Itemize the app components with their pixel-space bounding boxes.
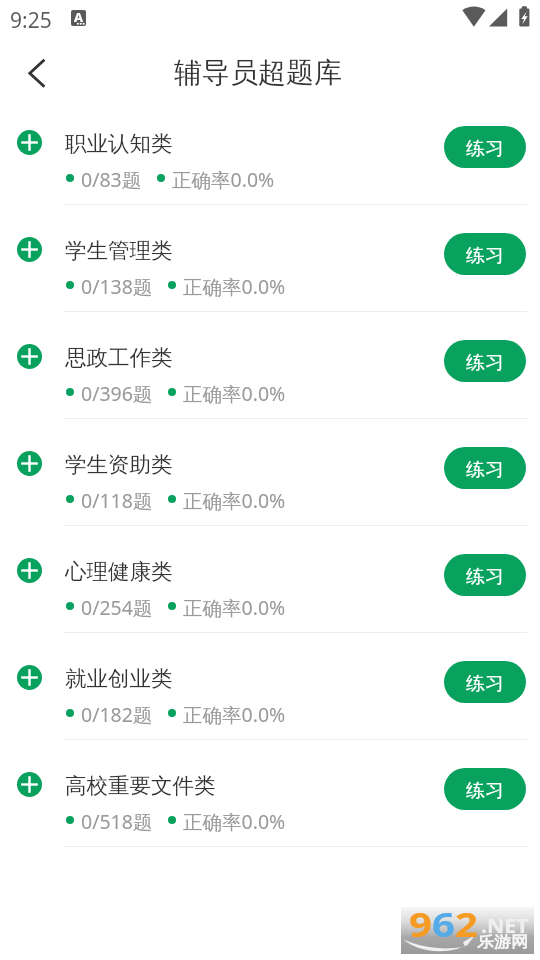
button[interactable]: 学生管理类 [0,204,540,311]
staticText: 0/83题 [81,166,142,193]
staticText: 9 [409,901,433,948]
staticText: 2 [455,901,479,948]
staticText: 正确率0.0% [183,487,286,514]
staticText: 练习 [466,779,504,803]
staticText: 学生资助类 [65,451,173,478]
button[interactable]: 高校重要文件类 [0,739,540,846]
staticText: 辅导员超题库 [174,55,342,90]
staticText: 学生管理类 [65,237,173,264]
staticText: 0/118题 [81,487,153,514]
staticText: 乐游网 [477,933,528,951]
staticText: 高校重要文件类 [65,772,216,799]
button[interactable]: 练习 [444,554,526,596]
staticText: 9:25 [10,6,52,35]
button[interactable]: 练习 [444,340,526,382]
staticText: 0/254题 [81,594,153,621]
staticText: 职业认知类 [65,130,173,157]
staticText: 正确率0.0% [183,380,286,407]
button[interactable]: 职业认知类 [0,97,540,204]
staticText: A [74,10,83,24]
staticText: 练习 [466,565,504,589]
staticText: 练习 [466,137,504,161]
staticText: 正确率0.0% [172,166,275,193]
button[interactable]: 练习 [444,447,526,489]
staticText: 正确率0.0% [183,273,286,300]
staticText: .NET [481,913,529,939]
staticText: 正确率0.0% [183,701,286,728]
button[interactable]: 练习 [444,233,526,275]
staticText: 练习 [466,351,504,375]
button[interactable]: 心理健康类 [0,525,540,632]
staticText: 0/182题 [81,701,153,728]
staticText: 练习 [466,672,504,696]
button[interactable]: Back [12,49,60,89]
staticText: 正确率0.0% [183,594,286,621]
staticText: 0/138题 [81,273,153,300]
button[interactable]: 思政工作类 [0,311,540,418]
button[interactable]: 就业创业类 [0,632,540,739]
button[interactable]: 学生资助类 [0,418,540,525]
staticText: 0/396题 [81,380,153,407]
button[interactable]: 练习 [444,768,526,810]
staticText: 6 [432,901,456,948]
staticText: 正确率0.0% [183,808,286,835]
staticText: 练习 [466,244,504,268]
staticText: 思政工作类 [65,344,173,371]
button[interactable]: 练习 [444,126,526,168]
staticText: 0/518题 [81,808,153,835]
staticText: 心理健康类 [65,558,173,585]
button[interactable]: 练习 [444,661,526,703]
staticText: 练习 [466,458,504,482]
staticText: 就业创业类 [65,665,173,692]
